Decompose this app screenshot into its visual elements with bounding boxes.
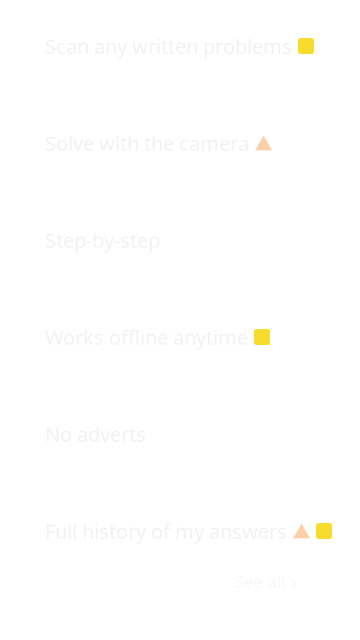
- staticText: Full history of my answers: [45, 518, 287, 544]
- button[interactable]: Scan any written problems: [45, 35, 350, 57]
- staticText: No adverts: [45, 421, 146, 447]
- button[interactable]: Full history of my answers: [45, 520, 350, 542]
- button[interactable]: Step-by-step: [45, 229, 350, 251]
- button[interactable]: Solve with the camera: [45, 132, 350, 154]
- staticText: Solve with the camera: [45, 130, 249, 156]
- staticText: Works offline anytime: [45, 324, 248, 350]
- staticText: Step-by-step: [45, 227, 160, 253]
- button[interactable]: Works offline anytime: [45, 326, 350, 348]
- staticText: Scan any written problems: [45, 33, 292, 59]
